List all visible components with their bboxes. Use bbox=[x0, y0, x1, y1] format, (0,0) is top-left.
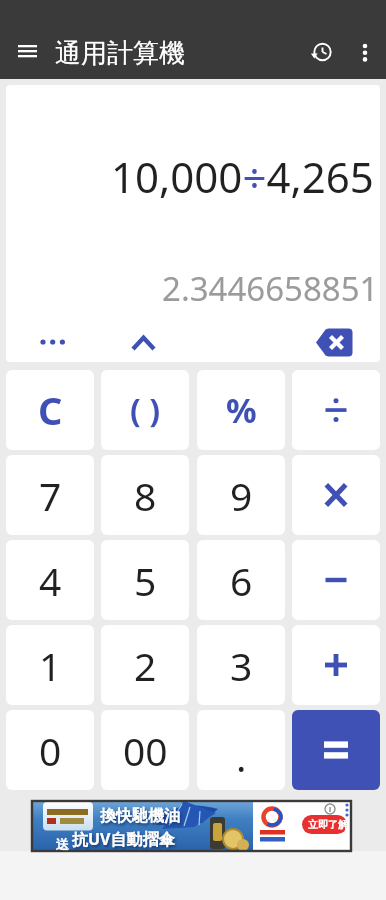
button[interactable]: 換快馳機油 bbox=[32, 801, 351, 851]
button[interactable] bbox=[308, 322, 360, 362]
button[interactable]: 0 bbox=[6, 710, 94, 790]
staticText: 換快馳機油 bbox=[100, 806, 180, 826]
button[interactable]: 5 bbox=[101, 540, 189, 620]
button[interactable]: . bbox=[197, 710, 285, 790]
staticText: 通用計算機 bbox=[55, 37, 185, 70]
button[interactable]: 00 bbox=[101, 710, 189, 790]
button[interactable] bbox=[12, 36, 44, 68]
staticText: C bbox=[38, 384, 63, 436]
button[interactable]: % bbox=[197, 370, 285, 450]
button[interactable]: C bbox=[6, 370, 94, 450]
button[interactable]: 3 bbox=[197, 625, 285, 705]
staticText: ( ) bbox=[130, 388, 161, 432]
staticText: 4 bbox=[39, 554, 62, 607]
staticText: 送 bbox=[56, 836, 69, 852]
button[interactable]: 9 bbox=[197, 455, 285, 535]
staticText: 6 bbox=[230, 554, 253, 607]
button[interactable]: 2 bbox=[101, 625, 189, 705]
staticText: 10,000÷4,265 bbox=[111, 148, 374, 205]
staticText: 0 bbox=[39, 724, 62, 777]
button[interactable] bbox=[122, 325, 164, 359]
staticText: 1 bbox=[39, 639, 62, 692]
button[interactable]: 6 bbox=[197, 540, 285, 620]
button[interactable]: 8 bbox=[101, 455, 189, 535]
staticText: 7 bbox=[39, 469, 62, 522]
button[interactable] bbox=[350, 36, 380, 68]
button[interactable] bbox=[292, 540, 380, 620]
staticText: 9 bbox=[230, 469, 253, 522]
staticText: 立即了解 bbox=[308, 818, 348, 831]
button[interactable]: 4 bbox=[6, 540, 94, 620]
staticText: 3 bbox=[230, 639, 253, 692]
button[interactable] bbox=[306, 36, 338, 68]
button[interactable]: ( ) bbox=[101, 370, 189, 450]
button[interactable]: 1 bbox=[6, 625, 94, 705]
staticText: . bbox=[236, 730, 247, 783]
button[interactable] bbox=[292, 710, 380, 790]
staticText: 00 bbox=[123, 724, 168, 777]
button[interactable] bbox=[292, 370, 380, 450]
button[interactable] bbox=[292, 455, 380, 535]
button[interactable]: 7 bbox=[6, 455, 94, 535]
staticText: 抗UV自動摺傘 bbox=[72, 828, 175, 850]
staticText: 8 bbox=[134, 469, 157, 522]
staticText: 2.3446658851 bbox=[162, 266, 379, 311]
button[interactable] bbox=[24, 325, 80, 359]
button[interactable] bbox=[292, 625, 380, 705]
staticText: % bbox=[226, 387, 257, 433]
staticText: 5 bbox=[134, 554, 157, 607]
staticText: 2 bbox=[134, 639, 157, 692]
